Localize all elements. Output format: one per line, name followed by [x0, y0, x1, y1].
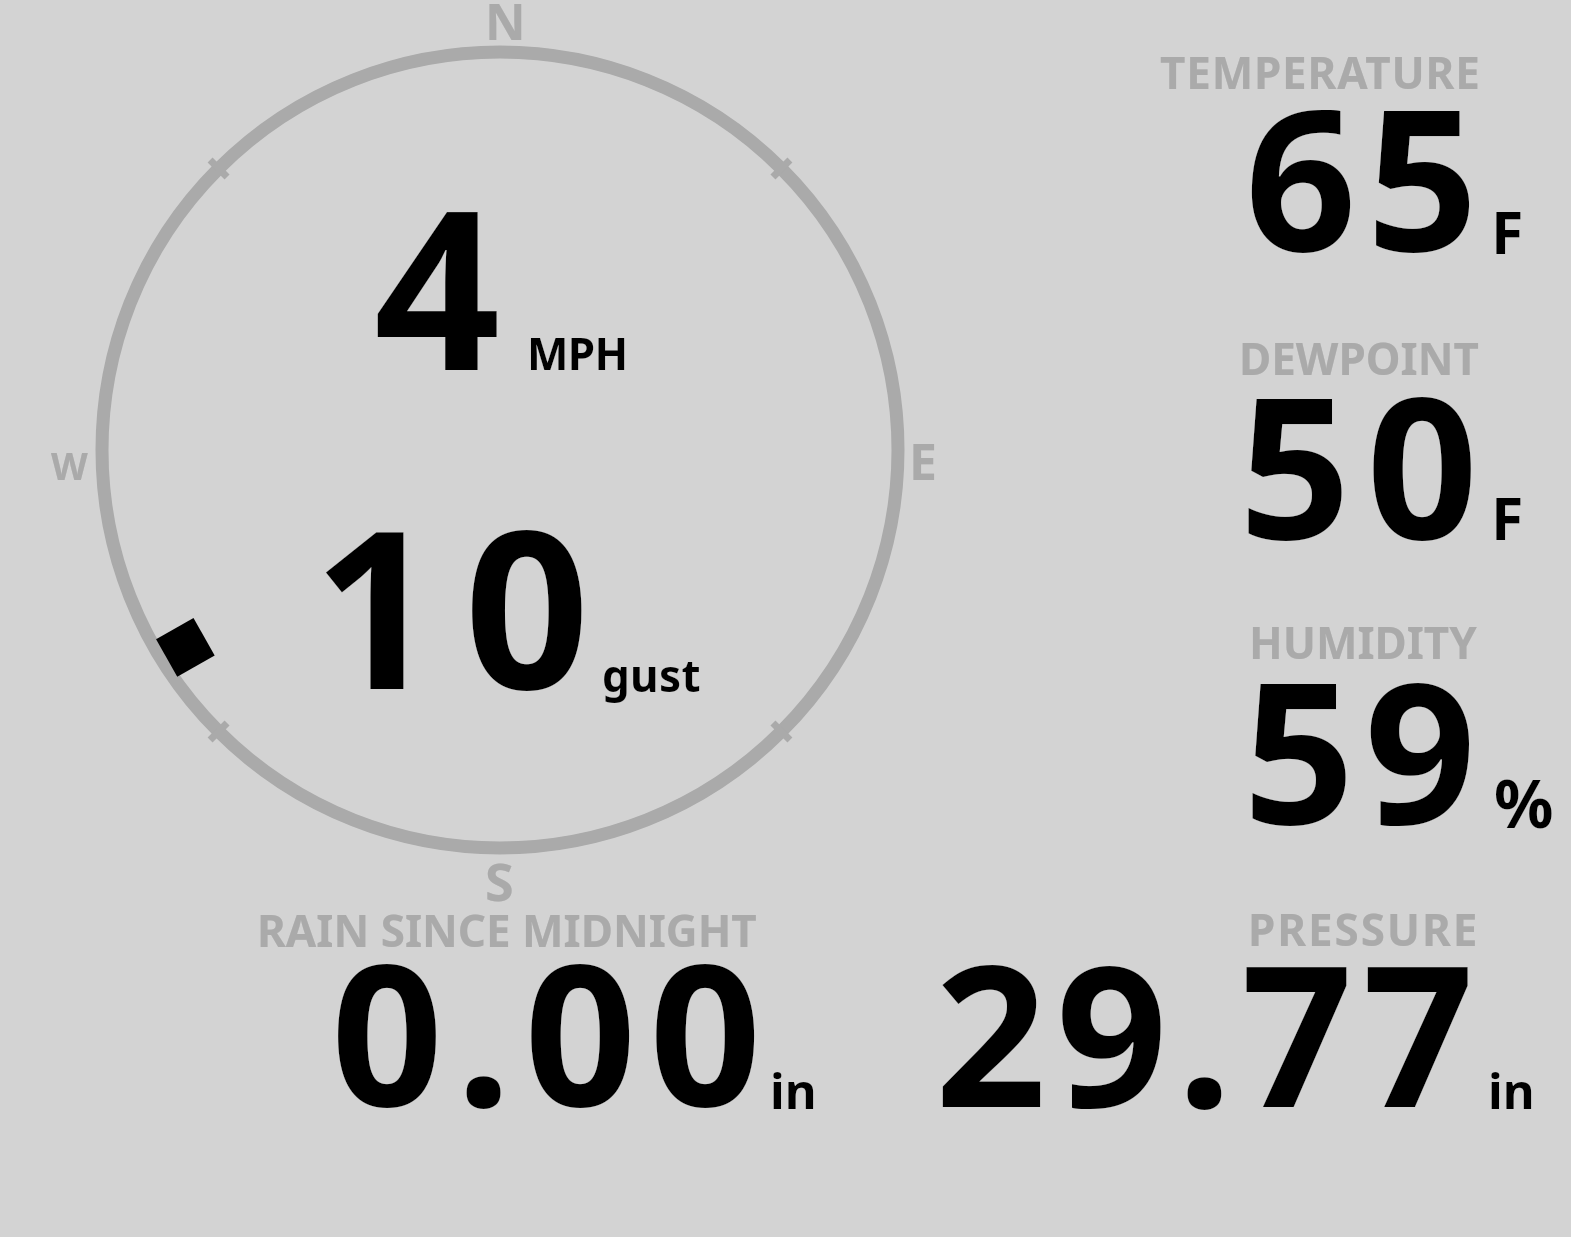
button[interactable]: Pressure 29.77 inches — [930, 905, 1540, 1118]
button[interactable]: Rain since midnight 0.00 inches — [255, 908, 825, 1118]
staticText: 65 — [1245, 43, 1489, 309]
button[interactable]: Humidity 59 percent — [1150, 620, 1571, 835]
staticText: MPH — [527, 323, 628, 383]
staticText: 4 — [374, 134, 501, 435]
staticText: 29.77 — [935, 899, 1484, 1165]
staticText: gust — [602, 645, 701, 705]
staticText: F — [1491, 191, 1524, 271]
staticText: 10 — [313, 455, 616, 753]
staticText: % — [1494, 757, 1554, 847]
staticText: RAIN SINCE MIDNIGHT — [257, 900, 757, 960]
staticText: S — [485, 845, 514, 916]
staticText: HUMIDITY — [1249, 612, 1477, 672]
staticText: in — [770, 1057, 817, 1124]
staticText: TEMPERATURE — [1160, 42, 1481, 102]
staticText: E — [909, 427, 937, 495]
button[interactable]: Temperature 65 degrees Fahrenheit — [1150, 50, 1550, 265]
staticText: DEWPOINT — [1239, 328, 1479, 388]
staticText: F — [1491, 477, 1524, 557]
staticText: N — [485, 0, 526, 55]
staticText: 50 — [1239, 331, 1495, 597]
staticText: 59 — [1243, 616, 1487, 882]
staticText: W — [51, 439, 88, 491]
staticText: in — [1488, 1057, 1535, 1124]
button[interactable]: Wind 4 miles per hour, gusting 10, from … — [102, 52, 898, 848]
staticText: 0.00 — [331, 896, 775, 1163]
staticText: PRESSURE — [1248, 899, 1480, 959]
button[interactable]: Dewpoint 50 degrees Fahrenheit — [1150, 335, 1550, 550]
